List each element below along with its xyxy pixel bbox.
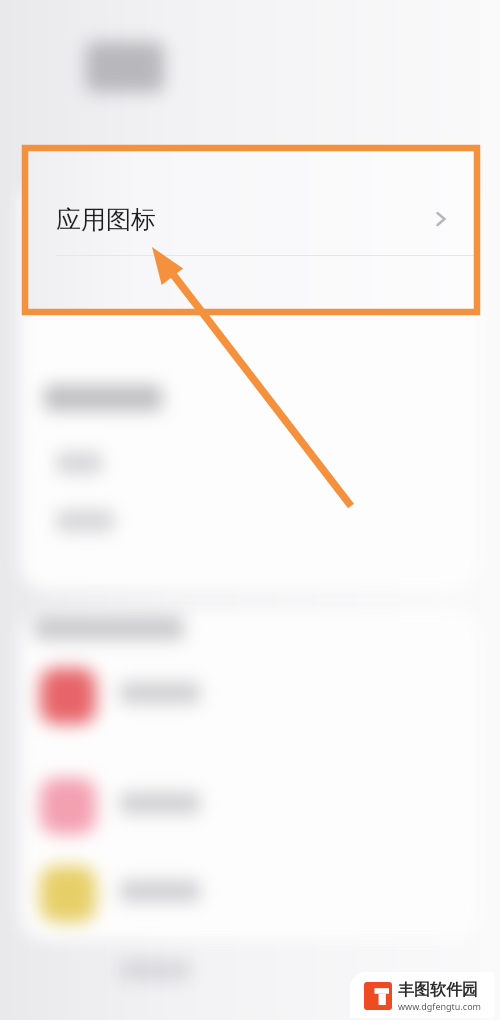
staticText: 丰图软件园 xyxy=(398,980,478,1000)
staticText: www.dgfengtu.com xyxy=(398,1000,482,1012)
staticText: 应用图标 xyxy=(56,204,156,235)
button[interactable]: 应用图标 xyxy=(28,183,474,255)
